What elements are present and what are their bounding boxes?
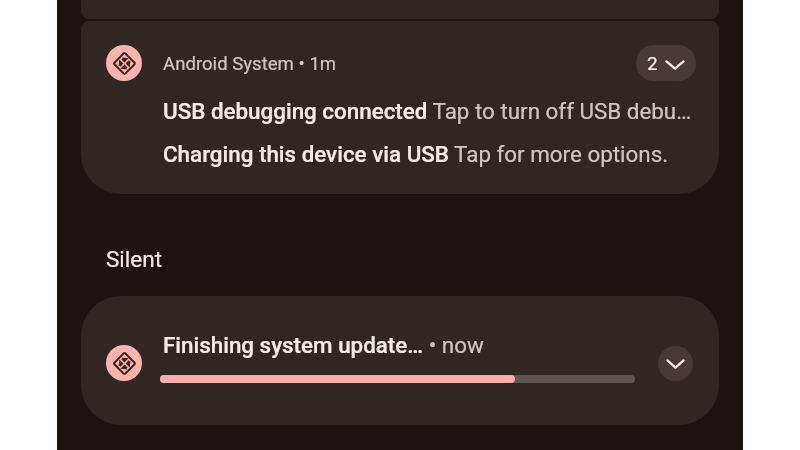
staticText: 2 (647, 52, 658, 74)
staticText: Android System • 1m (163, 53, 337, 75)
button[interactable]: Expand notification group, 2 notificatio… (636, 45, 696, 81)
button[interactable]: Finishing system update… • now (81, 296, 719, 425)
button[interactable]: Expand notification (658, 346, 693, 381)
staticText: USB debugging connected Tap to turn off … (163, 98, 692, 124)
staticText: Silent (106, 246, 163, 272)
staticText: Finishing system update… • now (163, 332, 484, 358)
button[interactable]: Android System • 1m (81, 21, 719, 194)
staticText: Charging this device via USB Tap for mor… (163, 141, 669, 167)
